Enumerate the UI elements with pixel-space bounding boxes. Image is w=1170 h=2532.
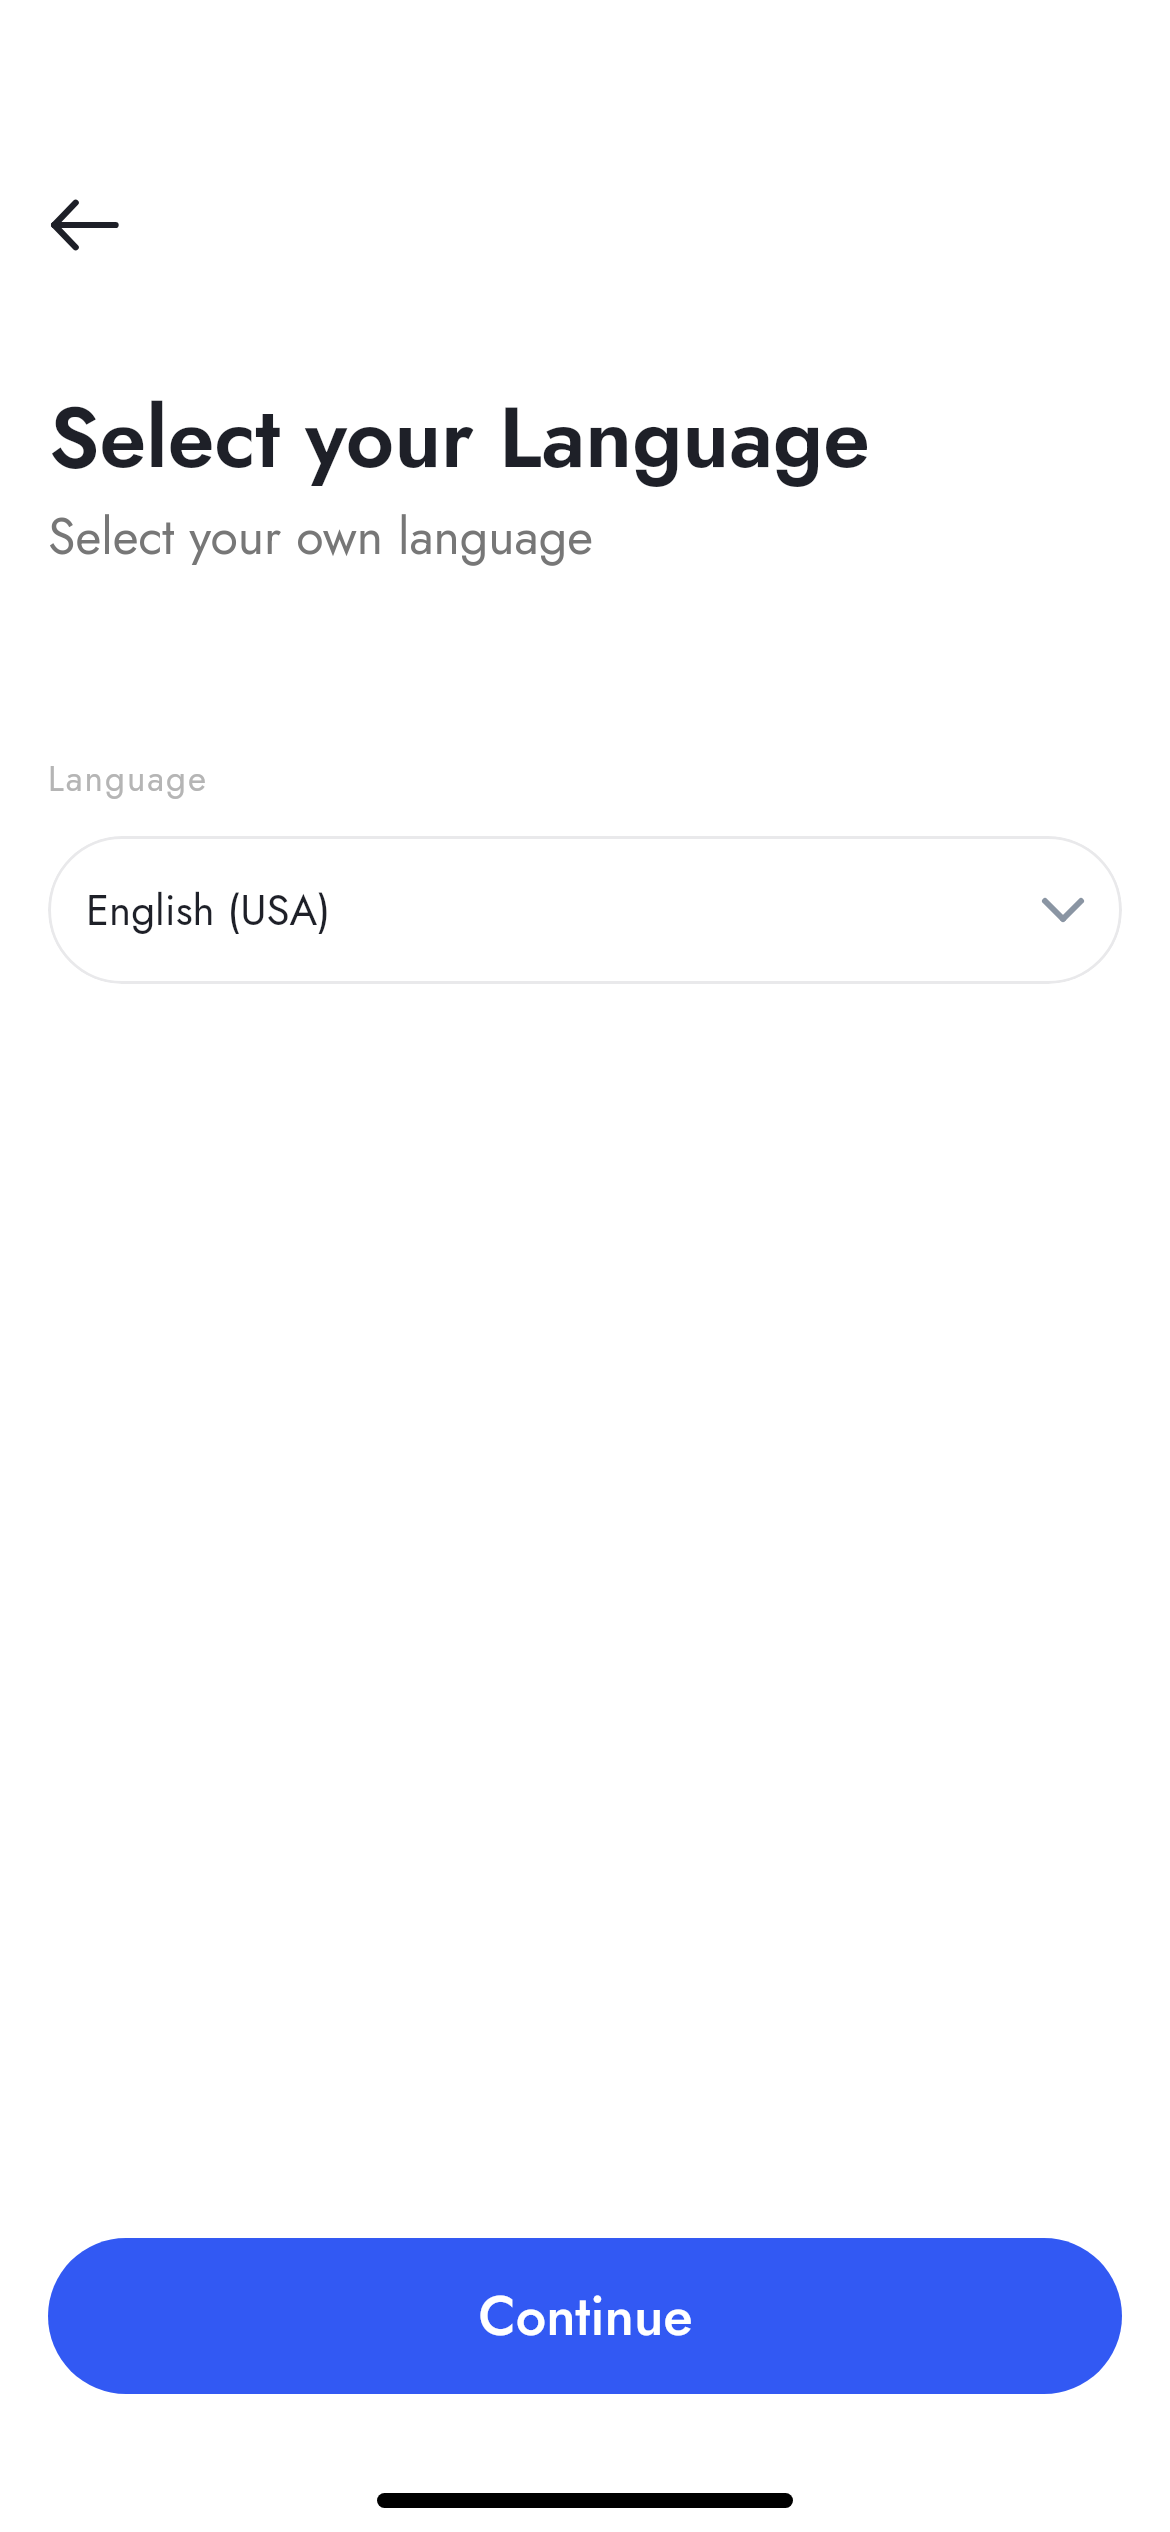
button[interactable]: Continue xyxy=(48,2238,1122,2394)
staticText: Select your own language xyxy=(48,500,593,572)
staticText: Select your Language xyxy=(49,377,870,498)
button[interactable]: English (USA) xyxy=(48,836,1122,984)
staticText: Continue xyxy=(478,2277,693,2355)
staticText: English (USA) xyxy=(86,880,331,941)
staticText: Language xyxy=(48,754,209,805)
button[interactable]: Back xyxy=(28,165,148,285)
